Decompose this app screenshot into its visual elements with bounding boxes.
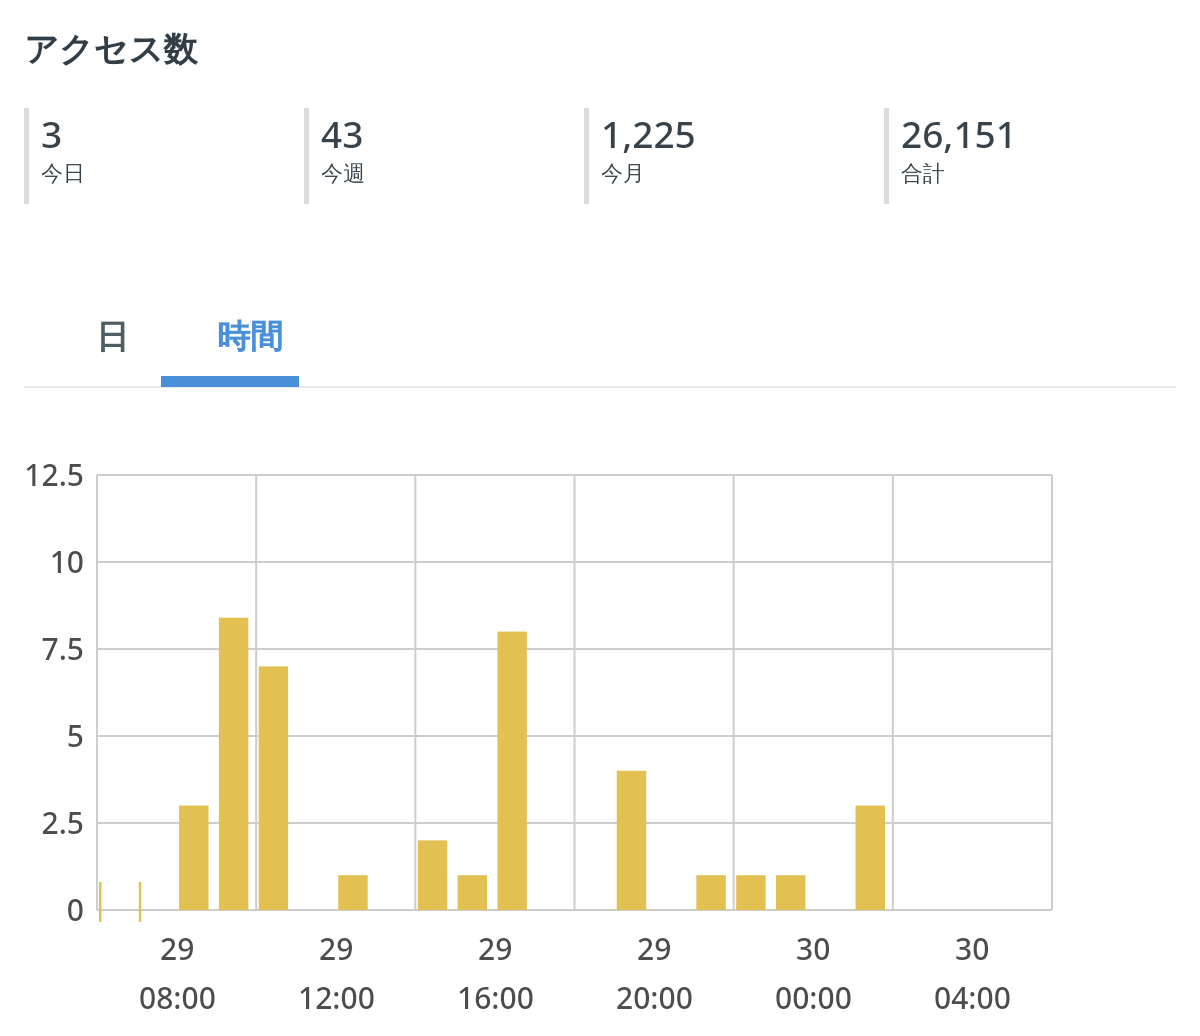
staticText: 0 — [66, 889, 84, 930]
button[interactable]: 3 — [24, 108, 264, 204]
staticText: 今日 — [41, 160, 85, 188]
staticText: 20:00 — [616, 977, 693, 1018]
staticText: 5 — [66, 715, 84, 756]
staticText: 29 — [637, 928, 672, 969]
button[interactable]: 43 — [304, 108, 544, 204]
staticText: 26,151 — [901, 108, 1017, 158]
staticText: 今週 — [321, 160, 365, 188]
staticText: 16:00 — [457, 977, 534, 1018]
staticText: 12.5 — [24, 454, 84, 495]
button[interactable]: 1,225 — [584, 108, 824, 204]
staticText: 30 — [955, 928, 990, 969]
staticText: 29 — [319, 928, 354, 969]
staticText: 00:00 — [775, 977, 852, 1018]
staticText: アクセス数 — [24, 28, 198, 71]
staticText: 30 — [796, 928, 831, 969]
staticText: 04:00 — [934, 977, 1011, 1018]
staticText: 日 — [96, 316, 129, 358]
staticText: 29 — [160, 928, 195, 969]
staticText: 合計 — [901, 160, 945, 188]
staticText: 43 — [321, 108, 364, 158]
staticText: 今月 — [601, 160, 645, 188]
staticText: 29 — [478, 928, 513, 969]
staticText: 3 — [41, 108, 63, 158]
staticText: 12:00 — [298, 977, 375, 1018]
staticText: 10 — [49, 541, 84, 582]
button[interactable]: 26,151 — [884, 108, 1124, 204]
staticText: 08:00 — [139, 977, 216, 1018]
staticText: 2.5 — [41, 802, 84, 843]
staticText: 7.5 — [41, 628, 84, 669]
button[interactable]: 日 — [43, 288, 181, 386]
button[interactable]: 時間 — [181, 288, 319, 386]
staticText: 時間 — [217, 316, 283, 358]
staticText: 1,225 — [601, 108, 696, 158]
